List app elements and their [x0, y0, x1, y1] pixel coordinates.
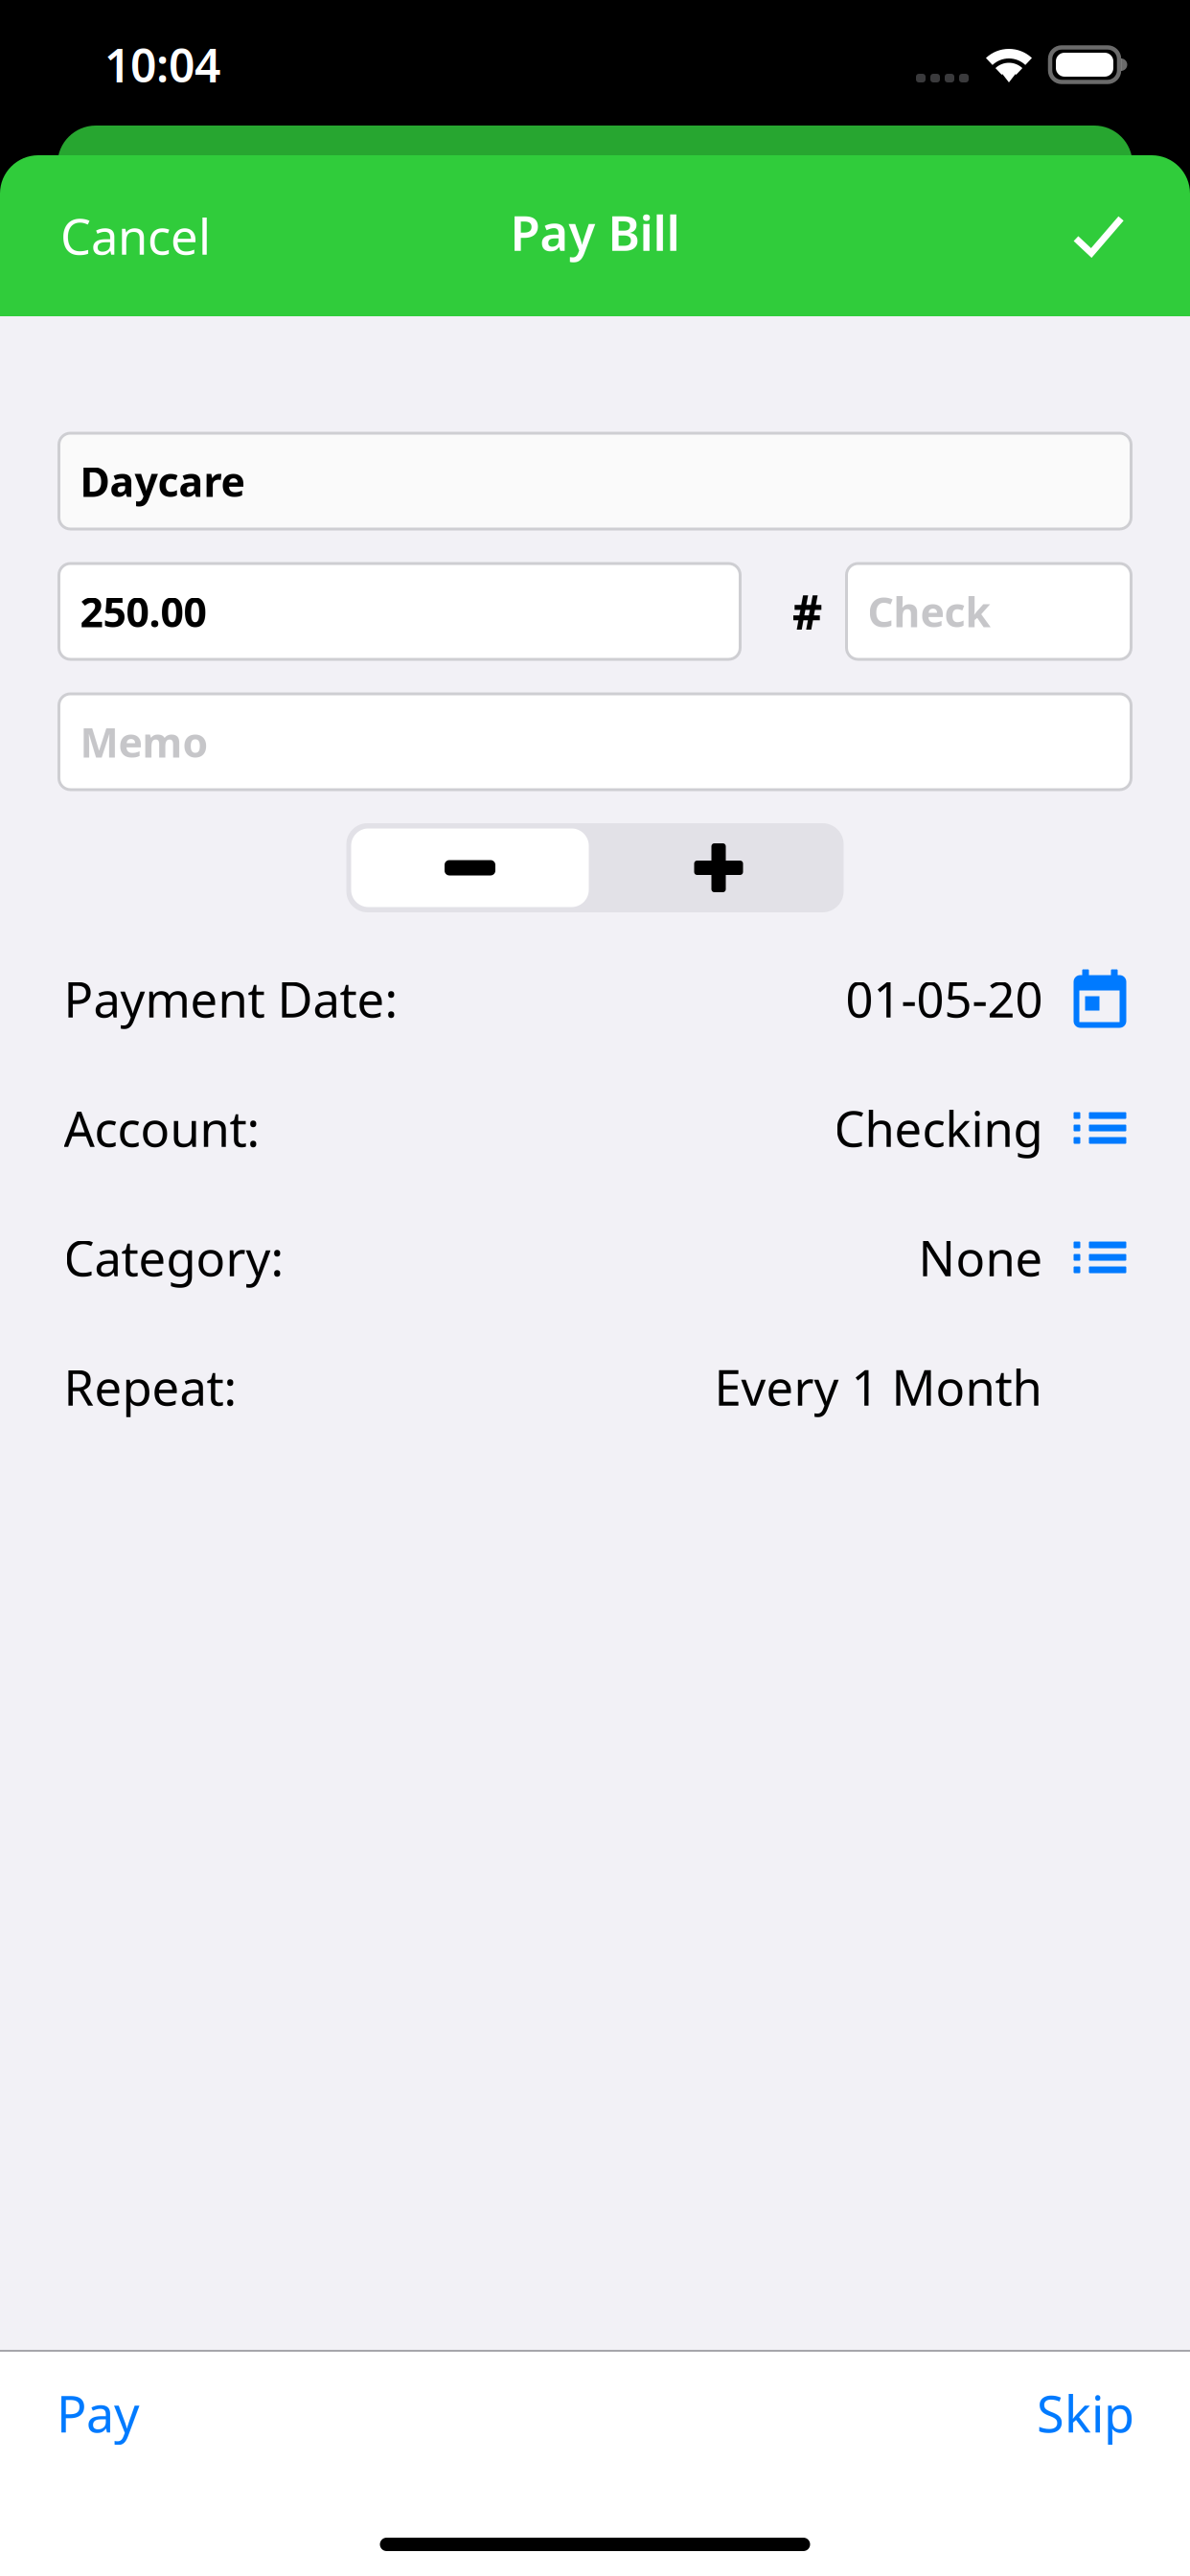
staticText: Skip — [1037, 2380, 1134, 2446]
staticText: Category: — [64, 1225, 284, 1290]
button[interactable]: Decrease — [346, 823, 594, 912]
staticText: 10:04 — [104, 34, 220, 95]
button[interactable]: Check — [847, 563, 1131, 659]
staticText: Account: — [64, 1096, 260, 1160]
staticText: # — [792, 580, 823, 643]
button[interactable]: Memo — [59, 694, 1131, 790]
button[interactable]: Confirm — [1038, 155, 1124, 316]
button[interactable]: Pay — [57, 2352, 140, 2474]
staticText: Payment Date: — [64, 966, 398, 1031]
button[interactable]: Payment Date: — [64, 951, 1126, 1046]
staticText: Check — [868, 584, 990, 639]
button[interactable]: Category: — [64, 1209, 1126, 1305]
staticText: Checking — [834, 1096, 1043, 1160]
staticText: Cancel — [60, 204, 211, 268]
button[interactable]: Increase — [594, 823, 844, 912]
staticText: Daycare — [80, 454, 245, 508]
staticText: 01-05-20 — [846, 966, 1043, 1031]
button[interactable]: Daycare — [59, 433, 1131, 529]
staticText: Every 1 Month — [714, 1355, 1042, 1419]
staticText: None — [918, 1225, 1043, 1290]
button[interactable]: Account: — [64, 1080, 1126, 1176]
button[interactable]: Cancel — [60, 155, 211, 316]
staticText: 250.00 — [80, 584, 206, 639]
staticText: Pay — [57, 2380, 140, 2446]
button[interactable]: 250.00 — [59, 563, 740, 659]
staticText: Pay Bill — [510, 200, 680, 264]
button[interactable]: Skip — [1037, 2352, 1134, 2474]
staticText: Memo — [80, 715, 208, 769]
staticText: Repeat: — [64, 1355, 237, 1419]
